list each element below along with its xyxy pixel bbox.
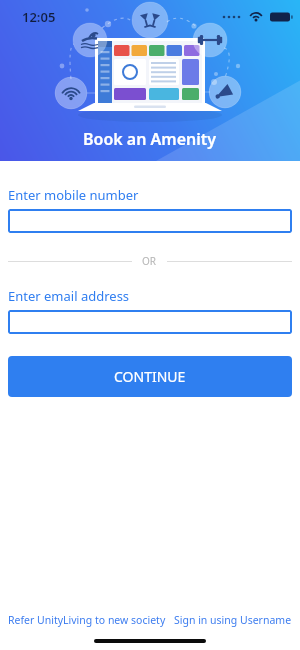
- button[interactable]: [8, 209, 292, 233]
- staticText: 12:05: [22, 8, 56, 26]
- staticText: OR: [142, 254, 157, 268]
- staticText: Book an Amenity: [83, 128, 217, 150]
- staticText: Enter email address: [8, 287, 130, 305]
- button[interactable]: Refer UnityLiving to new society: [8, 609, 166, 631]
- button[interactable]: Sign in using Username: [174, 609, 292, 631]
- staticText: Sign in using Username: [174, 613, 292, 627]
- button[interactable]: [8, 310, 292, 334]
- staticText: CONTINUE: [114, 367, 186, 386]
- staticText: Refer UnityLiving to new society: [8, 613, 166, 627]
- button[interactable]: CONTINUE: [8, 356, 292, 397]
- staticText: Enter mobile number: [8, 186, 139, 204]
